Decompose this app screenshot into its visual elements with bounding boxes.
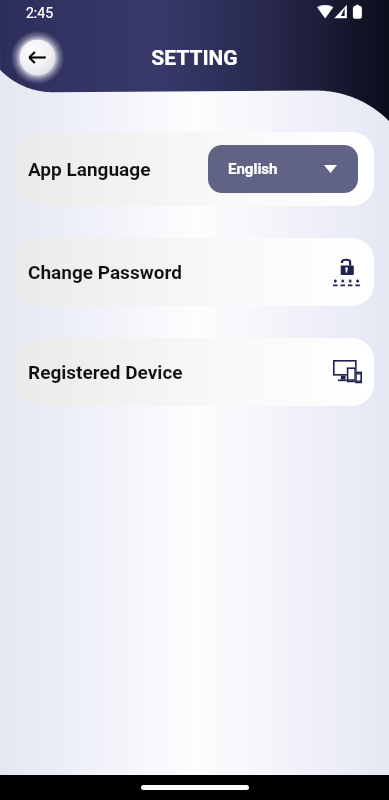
button[interactable]: Change Password bbox=[15, 238, 374, 306]
button[interactable]: App Language bbox=[15, 132, 374, 206]
staticText: 2:45 bbox=[26, 5, 53, 21]
button[interactable]: English bbox=[208, 145, 358, 193]
staticText: Change Password bbox=[28, 261, 182, 283]
button[interactable]: Registered Device bbox=[15, 338, 374, 406]
staticText: English bbox=[228, 160, 278, 178]
button[interactable]: Back bbox=[14, 34, 61, 81]
staticText: SETTING bbox=[151, 46, 238, 71]
staticText: App Language bbox=[28, 158, 151, 180]
staticText: Registered Device bbox=[28, 361, 183, 383]
